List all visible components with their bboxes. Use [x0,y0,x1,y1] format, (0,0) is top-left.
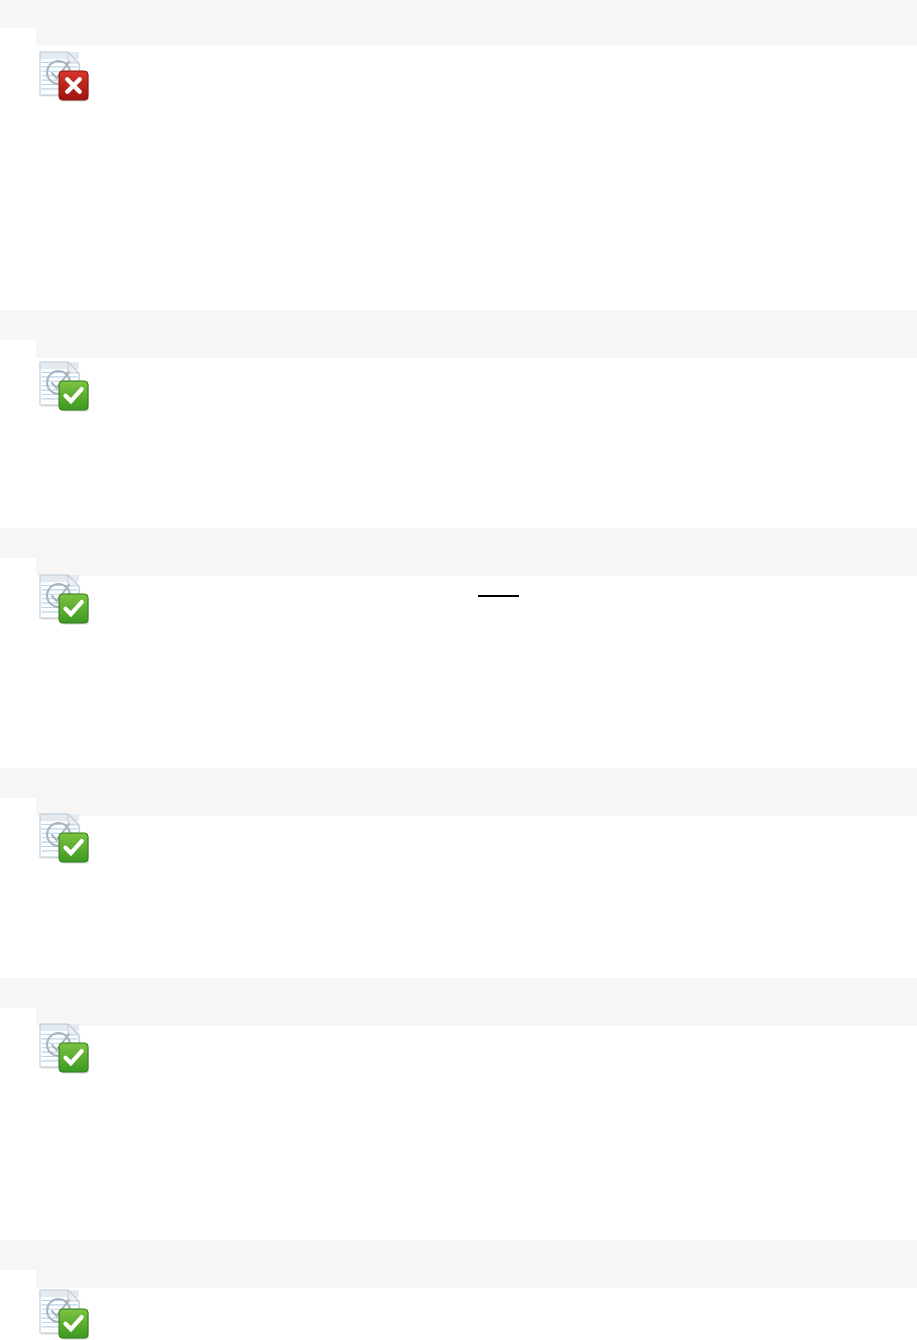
button[interactable]: Document accepted [38,573,90,625]
button[interactable]: Document rejected [38,50,90,102]
button[interactable]: Document accepted [38,1288,90,1340]
button[interactable]: Document accepted [38,812,90,864]
button[interactable]: Document accepted [38,1022,90,1074]
button[interactable]: Document accepted [38,360,90,412]
